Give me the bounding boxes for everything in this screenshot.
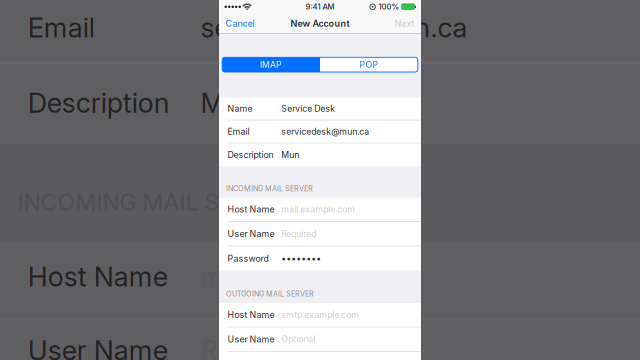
staticText: New Account (290, 18, 349, 29)
staticText: Email (228, 126, 250, 137)
staticText: servicedesk@mun.ca (201, 11, 468, 44)
staticText: IMAP (260, 59, 282, 70)
staticText: Password (228, 253, 269, 264)
staticText: mail.example.com (201, 260, 423, 293)
staticText: •••••••• (281, 253, 321, 264)
staticText: Host Name (28, 260, 168, 293)
staticText: Host Name (228, 309, 275, 320)
staticText: Email (28, 11, 95, 44)
button[interactable]: Host Name (219, 303, 421, 327)
button[interactable]: Password (219, 246, 421, 271)
staticText: Required (201, 334, 311, 360)
button[interactable]: Description (219, 143, 421, 166)
staticText: OUTGOING MAIL SERVER (226, 290, 314, 298)
staticText: Mun (201, 86, 257, 119)
button[interactable]: IMAP (222, 57, 320, 72)
button[interactable]: Next (388, 14, 421, 33)
staticText: Optional (281, 334, 315, 344)
staticText: User Name (28, 334, 168, 360)
staticText: 100% (378, 2, 399, 11)
button[interactable]: Cancel (219, 14, 261, 33)
button[interactable]: POP (320, 57, 418, 72)
staticText: POP (359, 59, 378, 70)
staticText: Host Name (228, 204, 275, 215)
staticText: 9:41 AM (305, 2, 334, 11)
staticText: User Name (228, 334, 275, 344)
staticText: Next (394, 18, 414, 29)
staticText: servicedesk@mun.ca (281, 126, 369, 137)
staticText: Mun (281, 149, 299, 160)
button[interactable]: Host Name (219, 197, 421, 222)
staticText: Cancel (225, 18, 254, 29)
button[interactable]: User Name (219, 222, 421, 246)
staticText: Description (28, 86, 170, 119)
button[interactable]: Email (219, 120, 421, 143)
staticText: INCOMING MAIL SERVER (226, 184, 313, 193)
staticText: User Name (228, 228, 275, 239)
staticText: Required (281, 229, 316, 239)
staticText: Service Desk (281, 103, 335, 114)
button[interactable]: User Name (219, 327, 421, 352)
staticText: INCOMING MAIL SERVER (17, 188, 292, 216)
staticText: Description (228, 149, 274, 160)
staticText: Name (228, 103, 253, 114)
staticText: mail.example.com (281, 204, 355, 215)
staticText: smtp.example.com (281, 310, 359, 320)
button[interactable]: Name (219, 97, 421, 120)
